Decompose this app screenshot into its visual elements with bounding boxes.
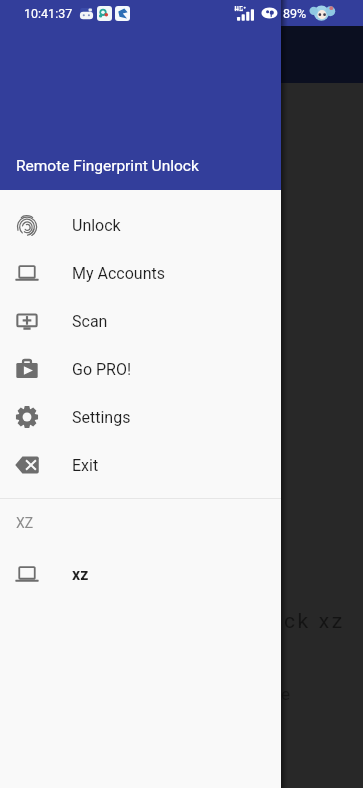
staticText: XZ <box>16 515 34 531</box>
staticText: Unlock <box>72 216 121 235</box>
staticText: ck xz <box>284 609 345 634</box>
button[interactable]: Unlock <box>0 201 281 249</box>
staticText: Go PRO! <box>72 360 132 379</box>
button[interactable]: My Accounts <box>0 249 281 297</box>
button[interactable]: Scan <box>0 297 281 345</box>
staticText: 10:41:37 <box>24 6 73 21</box>
staticText: Exit <box>72 456 99 475</box>
staticText: Remote Fingerprint Unlock <box>16 157 199 175</box>
staticText: xz <box>72 565 89 584</box>
staticText: e <box>281 684 291 704</box>
button[interactable]: Go PRO! <box>0 345 281 393</box>
button[interactable]: Exit <box>0 441 281 489</box>
staticText: Settings <box>72 408 131 427</box>
staticText: My Accounts <box>72 264 165 283</box>
button[interactable]: xz <box>0 550 281 598</box>
staticText: Scan <box>72 312 108 331</box>
staticText: 89% <box>283 6 307 21</box>
button[interactable]: Settings <box>0 393 281 441</box>
